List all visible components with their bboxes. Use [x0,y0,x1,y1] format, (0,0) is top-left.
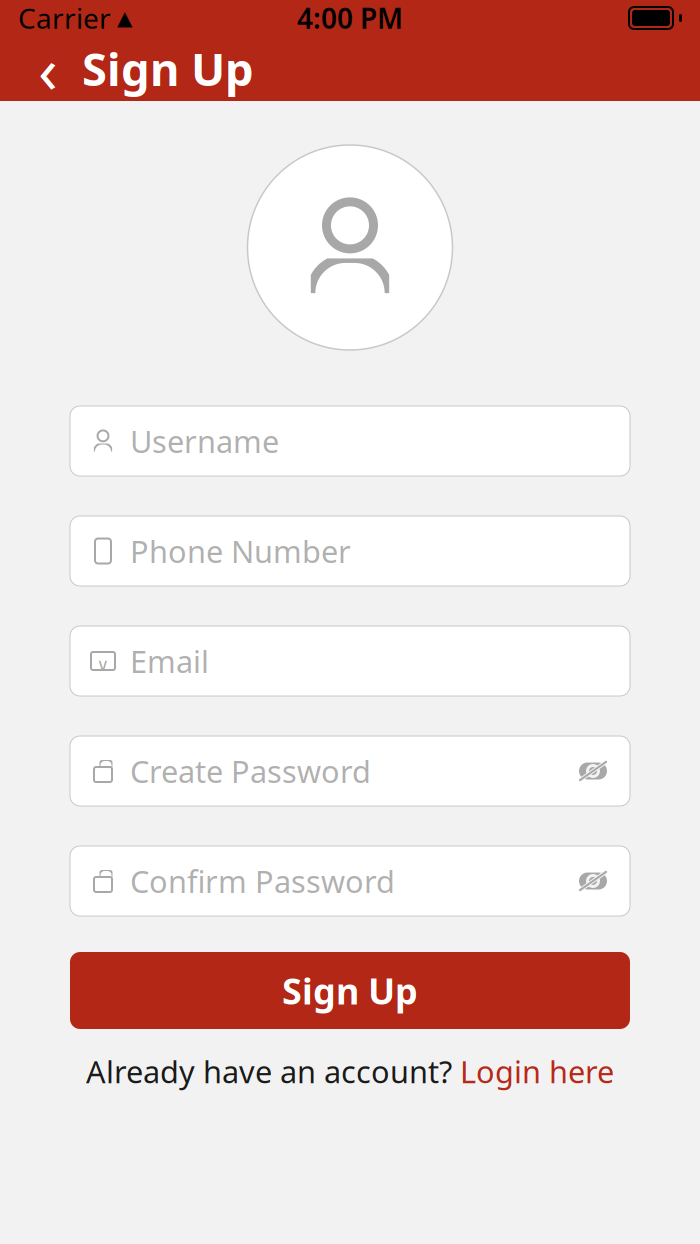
staticText: Carrier [18,0,111,37]
staticText: Confirm Password [130,861,395,901]
button[interactable]: ∨ [70,626,630,696]
staticText: ▲ [117,7,132,29]
button[interactable]: Sign Up [70,952,630,1029]
button[interactable]: Username [70,406,630,476]
staticText: Login here [460,1051,614,1092]
staticText: ∨ [96,655,109,675]
staticText: Create Password [130,751,371,791]
staticText: Email [130,641,209,681]
staticText: Sign Up [282,967,418,1014]
staticText: Already have an account? [86,1051,452,1092]
button[interactable]: Create Password [70,736,630,806]
button[interactable]: Confirm Password [70,846,630,916]
staticText: Sign Up [82,38,254,99]
staticText: Phone Number [130,531,351,571]
staticText: ‹ [38,26,58,111]
staticText: Username [130,421,279,461]
staticText: 4:00 PM [297,0,403,37]
button[interactable]: Back [22,42,74,94]
button[interactable]: Already have an account? [66,1043,634,1100]
button[interactable]: Phone Number [70,516,630,586]
